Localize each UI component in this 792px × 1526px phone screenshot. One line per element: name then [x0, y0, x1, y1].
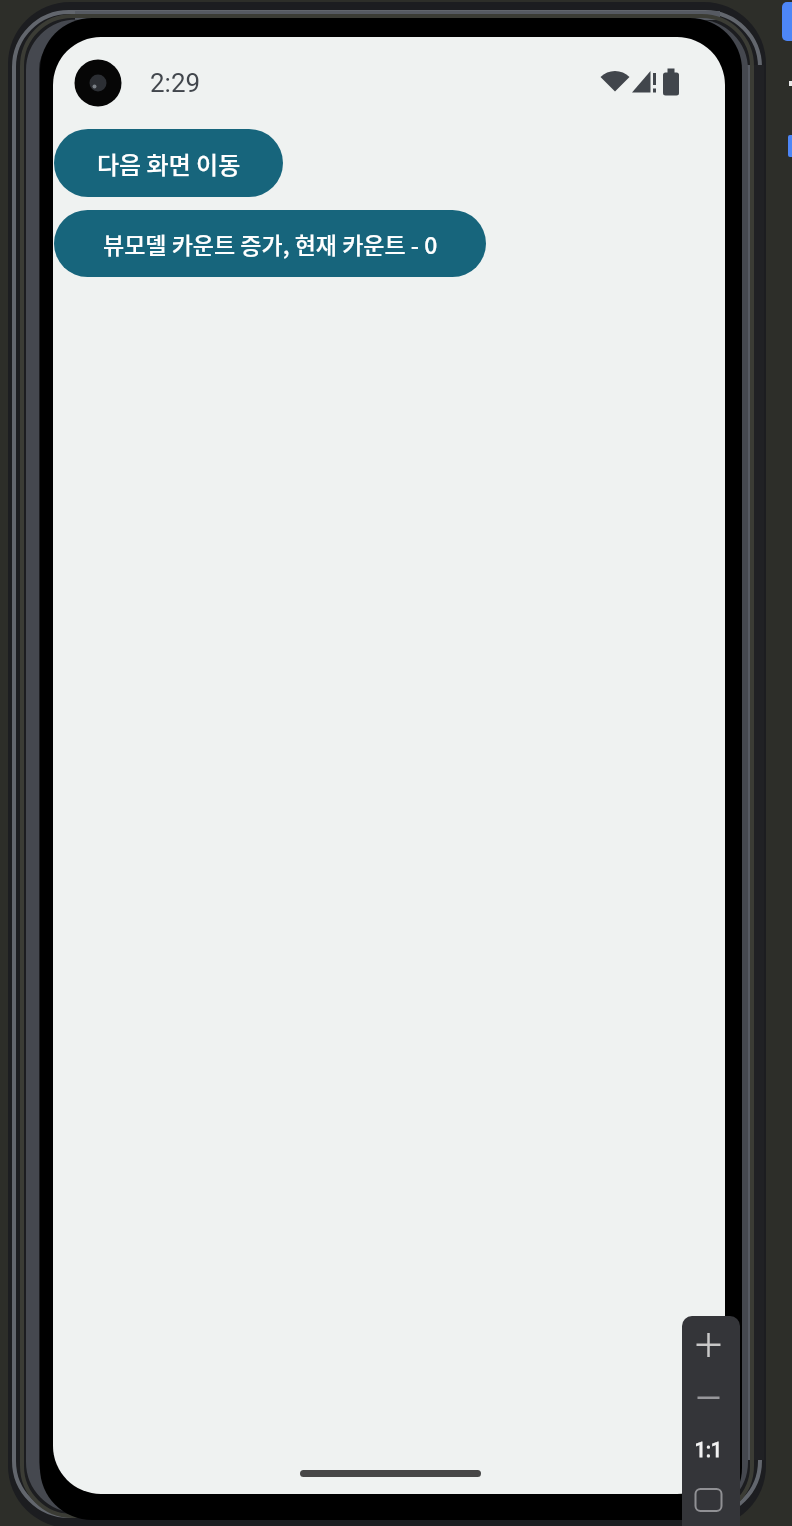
staticText: 다음 화면 이동 [97, 146, 241, 181]
staticText: 2:29 [150, 68, 201, 98]
button[interactable] [782, 2, 792, 41]
staticText: 1:1 [682, 1438, 735, 1464]
button[interactable]: 다음 화면 이동 [54, 129, 283, 197]
staticText: 뷰모델 카운트 증가, 현재 카운트 - 0 [103, 227, 438, 260]
button[interactable]: 1:1 [682, 1316, 740, 1526]
button[interactable]: 뷰모델 카운트 증가, 현재 카운트 - 0 [54, 210, 486, 277]
